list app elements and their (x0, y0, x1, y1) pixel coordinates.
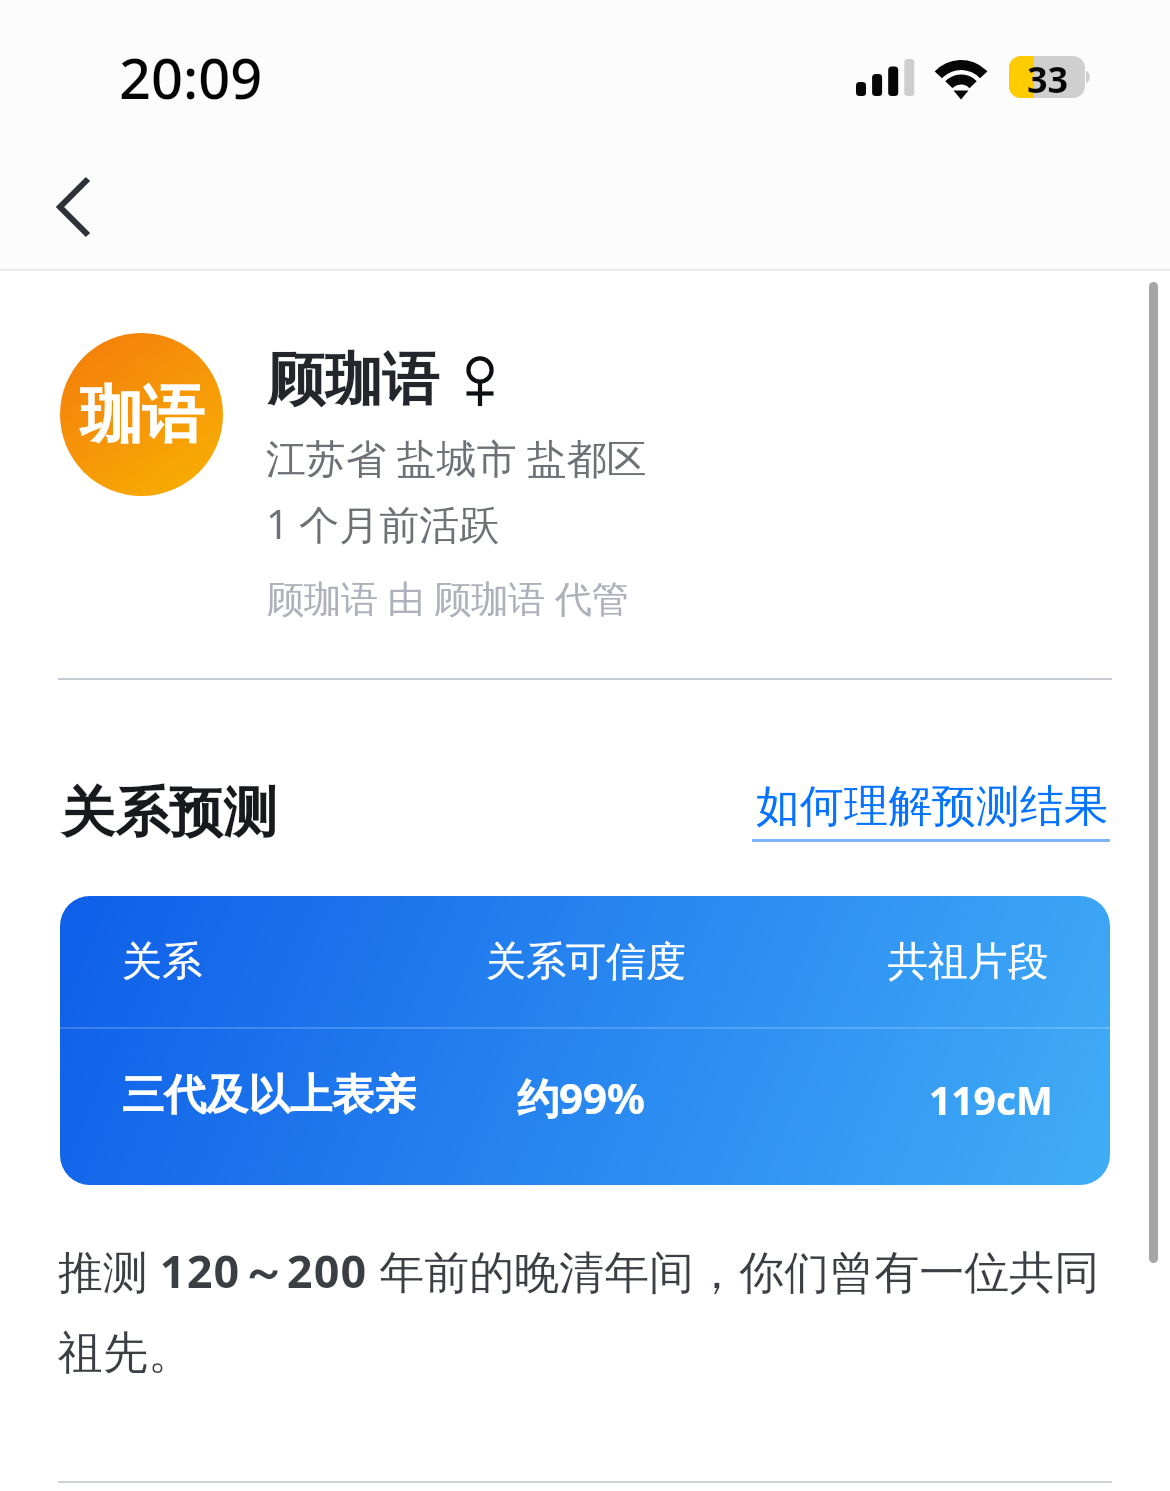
staticText: 顾珈语 由 顾珈语 代管 (267, 572, 629, 623)
button[interactable]: Back (24, 156, 124, 260)
button[interactable]: 如何理解预测结果 (748, 775, 1114, 847)
staticText: 119cM (929, 1073, 1053, 1126)
staticText: 顾珈语 (268, 344, 439, 416)
staticText: 推测 120～200 年前的晚清年间，你们曾有一位共同祖先。 (58, 1240, 1113, 1381)
staticText: 关系可信度 (486, 936, 686, 986)
staticText: 三代及以上表亲 (122, 1069, 416, 1122)
staticText: 珈语 (80, 376, 204, 454)
button[interactable]: 珈语 (60, 333, 223, 496)
staticText: 如何理解预测结果 (756, 779, 1108, 834)
button[interactable]: 关系 (60, 896, 1110, 1185)
staticText: 关系 (122, 936, 202, 986)
staticText: 约99% (517, 1069, 645, 1126)
staticText: 共祖片段 (888, 936, 1048, 986)
staticText: 江苏省 盐城市 盐都区 (266, 430, 647, 485)
staticText: 20:09 (119, 39, 263, 115)
staticText: 33 (1027, 56, 1069, 97)
staticText: 1 个月前活跃 (266, 496, 500, 551)
staticText: 关系预测 (61, 779, 277, 847)
